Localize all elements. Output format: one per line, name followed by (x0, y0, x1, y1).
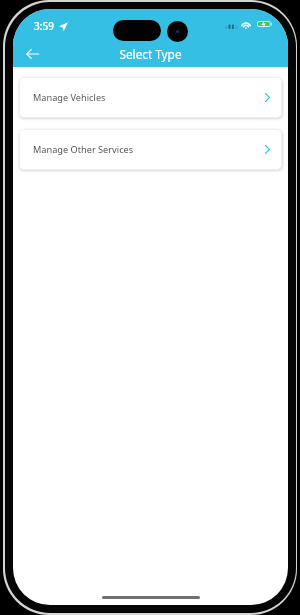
staticText: 3:59 (34, 19, 54, 33)
button[interactable]: Manage Other Services (19, 129, 282, 170)
staticText: Select Type (119, 46, 182, 62)
button[interactable]: Manage Vehicles (19, 77, 282, 118)
button[interactable]: Back (20, 42, 45, 66)
staticText: Manage Other Services (33, 143, 134, 156)
staticText: Manage Vehicles (33, 91, 106, 104)
